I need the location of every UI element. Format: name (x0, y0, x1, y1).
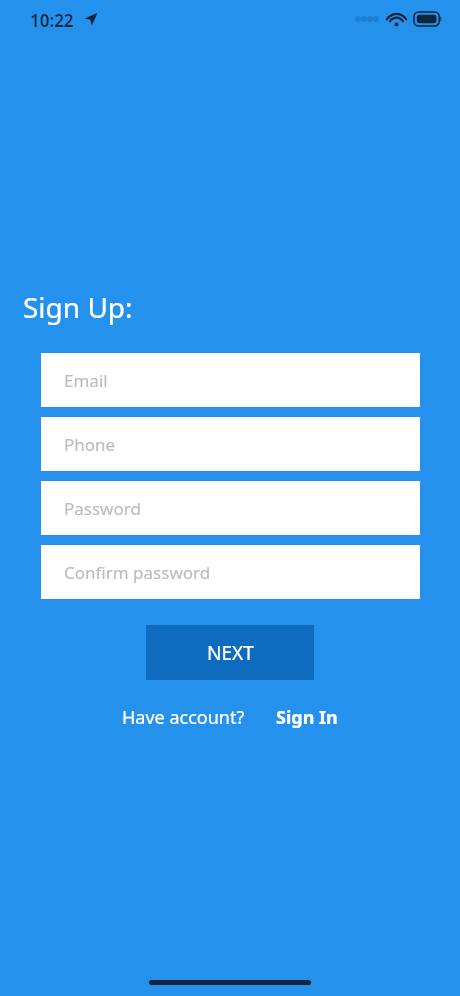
staticText: Password (64, 497, 141, 520)
button[interactable]: Have account? (122, 705, 245, 730)
button[interactable]: Sign In (276, 705, 338, 730)
staticText: Phone (64, 433, 116, 456)
staticText: Confirm password (64, 561, 211, 584)
staticText: NEXT (207, 640, 254, 666)
button[interactable]: Phone (41, 417, 420, 471)
button[interactable]: Email (41, 353, 420, 407)
button[interactable]: NEXT (146, 625, 314, 680)
button[interactable]: Password (41, 481, 420, 535)
button[interactable]: Confirm password (41, 545, 420, 599)
staticText: Email (64, 369, 108, 392)
staticText: Have account? (122, 705, 245, 730)
staticText: 10:22 (30, 9, 74, 32)
staticText: Sign Up: (23, 288, 133, 326)
staticText: Sign In (276, 705, 338, 730)
